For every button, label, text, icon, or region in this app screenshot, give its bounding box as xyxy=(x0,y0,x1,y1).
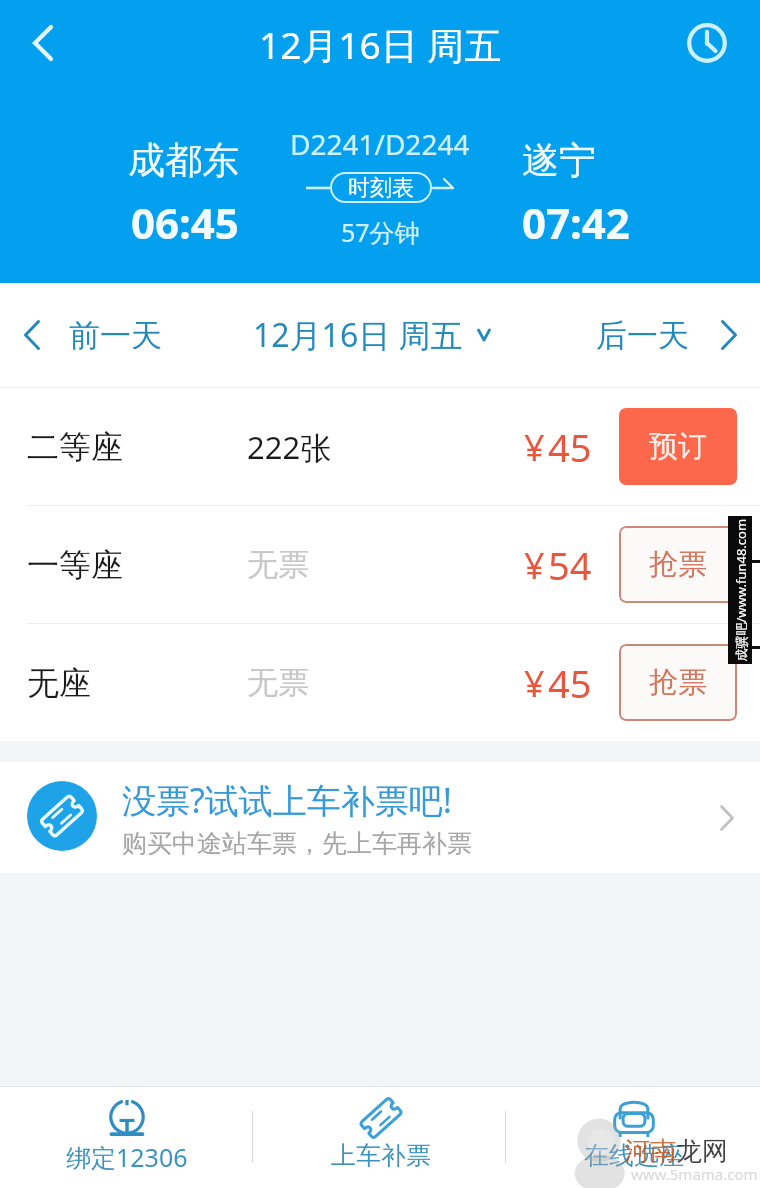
staticText: 06:45 xyxy=(131,194,239,251)
staticText: ¥ xyxy=(524,541,545,590)
button[interactable]: 时刻表 xyxy=(304,172,456,203)
button[interactable]: 绑定12306 xyxy=(0,1086,254,1188)
button[interactable]: 前一天 xyxy=(0,283,253,387)
staticText: 45 xyxy=(548,657,592,709)
staticText: 绑定12306 xyxy=(66,1140,188,1174)
staticText: ¥ xyxy=(524,423,545,472)
staticText: 12月16日 周五 xyxy=(253,313,463,357)
staticText: 上车补票 xyxy=(331,1140,431,1171)
staticText: 抢票 xyxy=(649,546,707,583)
staticText: 无票 xyxy=(247,663,309,702)
staticText: 遂宁 xyxy=(522,137,596,184)
staticText: 07:42 xyxy=(522,194,630,251)
staticText: 预订 xyxy=(649,428,707,465)
button[interactable]: 12月16日 周五 xyxy=(253,283,507,387)
button[interactable]: 在线选座 xyxy=(507,1086,760,1188)
button[interactable]: 没票?试试上车补票吧! xyxy=(0,762,760,873)
button[interactable]: 上车补票 xyxy=(254,1086,507,1188)
staticText: 成骥吧/www.fun48.com xyxy=(731,518,749,661)
staticText: 时刻表 xyxy=(348,174,414,202)
staticText: 后一天 xyxy=(596,316,689,355)
staticText: ¥ xyxy=(524,659,545,708)
button[interactable]: 抢票 xyxy=(619,526,737,603)
staticText: 57分钟 xyxy=(341,215,420,249)
staticText: 龙网 xyxy=(676,1135,728,1168)
button[interactable]: Timetable xyxy=(673,9,741,77)
staticText: 222张 xyxy=(247,426,332,468)
staticText: 一等座 xyxy=(27,545,123,585)
staticText: 无票 xyxy=(247,545,309,584)
staticText: 45 xyxy=(548,421,592,473)
staticText: 12月16日 周五 xyxy=(259,19,502,70)
staticText: 二等座 xyxy=(27,427,123,467)
staticText: 前一天 xyxy=(69,316,162,355)
staticText: 购买中途站车票，先上车再补票 xyxy=(122,828,472,859)
button[interactable]: 抢票 xyxy=(619,644,737,721)
staticText: www.5mama.com xyxy=(631,1164,758,1184)
staticText: 没票?试试上车补票吧! xyxy=(122,777,452,823)
button[interactable]: Back xyxy=(8,8,78,78)
staticText: 在线选座 xyxy=(584,1140,684,1171)
staticText: D2241/D2244 xyxy=(290,125,470,163)
staticText: 抢票 xyxy=(649,664,707,701)
staticText: 无座 xyxy=(27,663,91,703)
staticText: 54 xyxy=(548,539,592,591)
button[interactable]: 后一天 xyxy=(507,283,760,387)
button[interactable]: 预订 xyxy=(619,408,737,485)
staticText: 河南 xyxy=(624,1135,676,1168)
staticText: 成都东 xyxy=(128,137,239,184)
